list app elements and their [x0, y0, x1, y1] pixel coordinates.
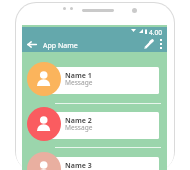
staticText: 4.00 — [149, 28, 163, 37]
staticText: Name 3 — [65, 161, 92, 170]
button[interactable]: Name 1 — [36, 67, 159, 94]
button[interactable]: Name 3 — [36, 157, 159, 170]
button[interactable]: Back — [24, 36, 40, 52]
staticText: App Name — [43, 41, 78, 51]
button[interactable]: Name 2 — [36, 112, 159, 139]
button[interactable]: Edit — [141, 37, 155, 51]
staticText: Message — [65, 123, 93, 132]
staticText: Message — [65, 78, 93, 87]
button[interactable]: More options — [154, 37, 168, 51]
staticText: Name 2 — [65, 116, 92, 126]
staticText: Name 1 — [65, 71, 92, 81]
